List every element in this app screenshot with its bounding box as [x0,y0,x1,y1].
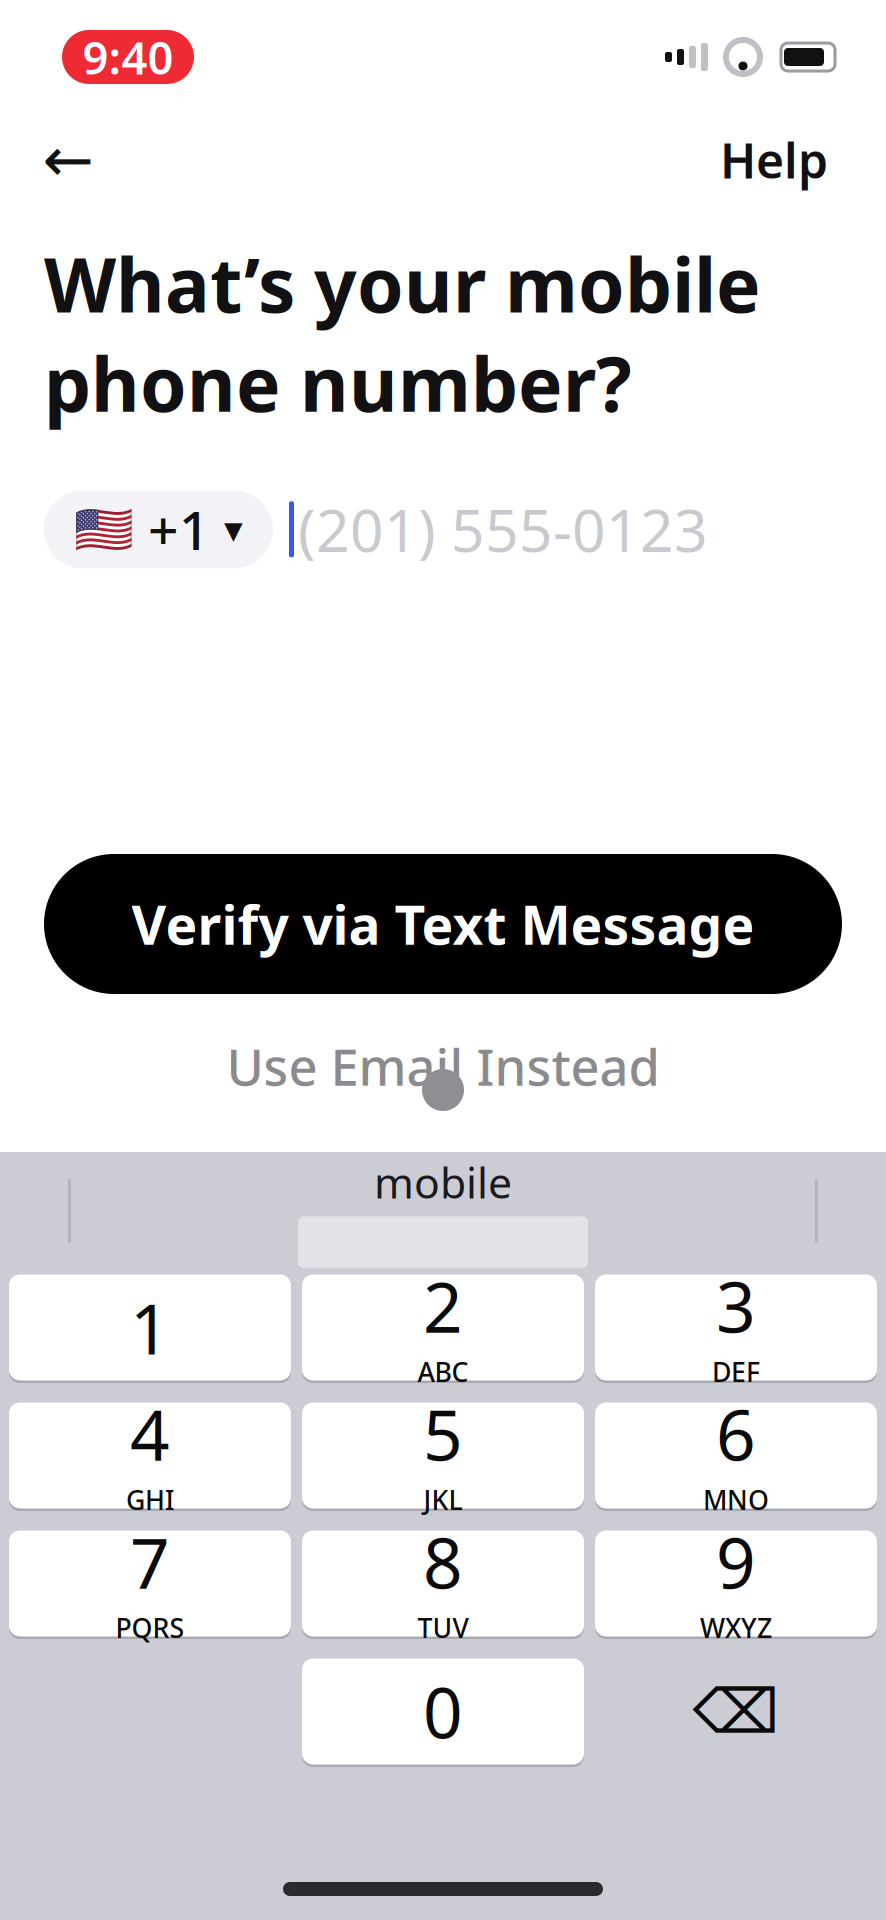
button[interactable]: Select country code [44,490,273,568]
staticText: GHI [126,1482,174,1517]
staticText: DEF [712,1354,760,1389]
staticText: ⌫ [692,1677,779,1746]
staticText: TUV [417,1610,468,1645]
staticText: 7 [130,1516,170,1608]
button[interactable]: Use Email Instead [196,1034,689,1098]
button[interactable]: 8 [302,1528,584,1639]
staticText: +1 [148,494,210,565]
staticText: 0 [423,1665,463,1758]
button[interactable]: Verify via Text Message [44,854,842,994]
staticText: 9 [716,1516,756,1608]
button[interactable]: 9 [595,1528,877,1639]
staticText: 🇺🇸 [74,502,134,557]
staticText: 1 [130,1281,170,1374]
button[interactable]: 6 [595,1400,877,1511]
button[interactable]: Back [30,122,106,198]
staticText: 6 [716,1388,756,1480]
button[interactable]: 5 [302,1400,584,1511]
staticText: ← [42,125,93,195]
staticText: WXYZ [700,1610,772,1645]
button[interactable]: 1 [9,1272,291,1383]
staticText: 8 [423,1516,463,1608]
staticText: 5 [423,1388,463,1480]
staticText: 4 [130,1388,170,1480]
staticText: (201) 555-0123 [298,490,708,568]
button[interactable]: Delete [595,1658,877,1764]
button[interactable]: 3 [595,1272,877,1383]
staticText: Use Email Instead [226,1032,659,1100]
staticText: JKL [423,1482,462,1517]
staticText: mobile [374,1154,512,1210]
button[interactable]: Help [710,122,838,198]
staticText: What’s your mobile phone number? [44,234,761,432]
button[interactable]: 7 [9,1528,291,1639]
staticText: 9:40 [82,27,173,87]
staticText: Help [720,128,828,192]
staticText: 3 [716,1260,756,1352]
button[interactable]: 2 [302,1272,584,1383]
staticText: 2 [423,1260,463,1352]
staticText: Verify via Text Message [131,889,754,959]
staticText: PQRS [115,1610,184,1645]
staticText: ABC [417,1354,468,1389]
button[interactable]: 4 [9,1400,291,1511]
button[interactable]: 0 [302,1656,584,1767]
staticText: MNO [703,1482,769,1517]
staticText: ▾ [224,508,243,550]
